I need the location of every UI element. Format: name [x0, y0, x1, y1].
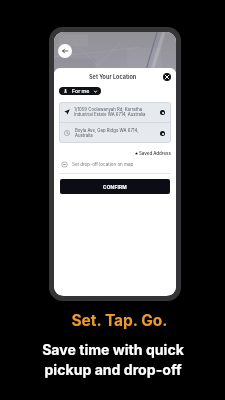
staticText: Australia: [75, 133, 93, 138]
staticText: Set Your Location: [89, 74, 137, 81]
staticText: Industrial Estate WA 6714, Australia: [74, 112, 146, 117]
button[interactable]: Close: [163, 73, 171, 81]
button[interactable]: Saved Address: [59, 148, 171, 158]
staticText: Saved Address: [139, 151, 171, 156]
button[interactable]: 1/1059 Coolawanyah Rd, Karratha: [59, 102, 171, 122]
button[interactable]: Remove address: [160, 110, 165, 115]
staticText: CONFIRM: [103, 184, 127, 190]
staticText: Set drop-off location on map: [72, 162, 134, 167]
staticText: Save time with quick pickup and drop-off: [1, 341, 225, 379]
staticText: 1/1059 Coolawanyah Rd, Karratha: [74, 107, 143, 112]
staticText: Set. Tap. Go.: [71, 311, 168, 330]
button[interactable]: Boyla Ave, Gap Ridge WA 6714,: [59, 123, 171, 143]
button[interactable]: CONFIRM: [60, 179, 170, 194]
button[interactable]: Remove address: [160, 131, 165, 136]
button[interactable]: Set drop-off location on map: [59, 158, 171, 173]
button[interactable]: For me: [59, 87, 101, 95]
button[interactable]: Back: [58, 44, 72, 58]
staticText: For me: [72, 88, 90, 94]
staticText: Boyla Ave, Gap Ridge WA 6714,: [75, 128, 139, 133]
